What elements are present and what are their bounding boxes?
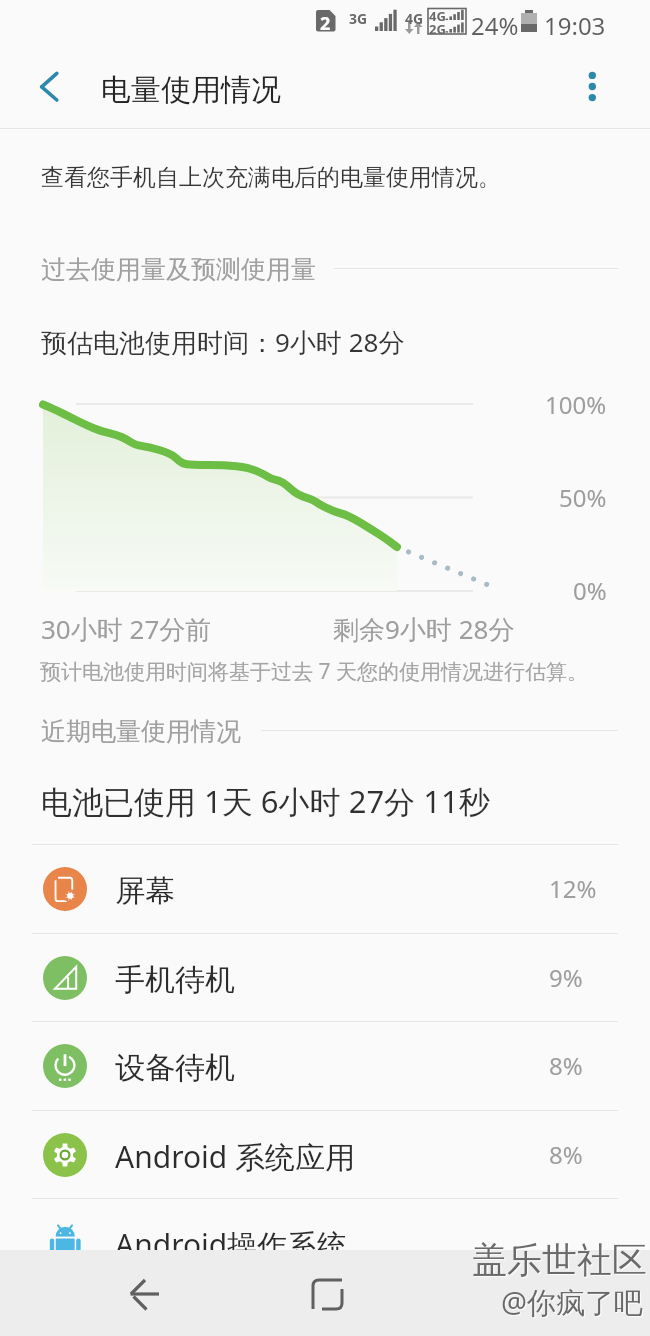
staticText: 50% [559,481,607,514]
staticText: 24% [471,9,519,42]
staticText: @你疯了吧 [501,1282,644,1322]
button[interactable]: More options [570,66,618,114]
button[interactable]: Back [24,66,72,114]
staticText: @你疯了吧 [502,1283,645,1323]
button[interactable]: Recents [292,1258,364,1330]
staticText: 手机待机 [115,961,235,999]
staticText: 电池已使用 1天 6小时 27分 11秒 [41,780,490,822]
staticText: 3G [349,9,368,28]
staticText: 2G [429,20,446,38]
button[interactable]: 设备待机 [0,1021,650,1110]
staticText: 盖乐世社区 [472,1238,647,1282]
staticText: 4G [405,9,424,28]
button[interactable]: 屏幕 [0,844,650,933]
staticText: 预计电池使用时间将基于过去 7 天您的使用情况进行估算。 [40,657,588,686]
staticText: 电量使用情况 [101,71,281,109]
staticText: 30小时 27分前 [41,611,212,647]
staticText: 8% [549,1049,583,1082]
staticText: 19:03 [544,9,606,42]
staticText: Android操作系统 [115,1224,348,1265]
staticText: 12% [549,872,597,905]
staticText: 查看您手机自上次充满电后的电量使用情况。 [41,163,501,192]
button[interactable]: Menu [475,1258,547,1330]
staticText: 过去使用量及预测使用量 [41,254,316,285]
staticText: 0% [573,574,607,607]
button[interactable]: Android操作系统 [0,1198,650,1287]
staticText: 预估电池使用时间：9小时 28分 [41,324,405,360]
staticText: 屏幕 [115,872,175,910]
staticText: 近期电量使用情况 [41,716,241,747]
staticText: 8% [549,1138,583,1171]
button[interactable]: 手机待机 [0,933,650,1022]
staticText: Android 系统应用 [115,1136,356,1177]
staticText: 盖乐世社区 [473,1239,648,1283]
staticText: 2 [320,11,331,36]
staticText: 4G [429,7,446,25]
staticText: 设备待机 [115,1049,235,1087]
button[interactable]: Android 系统应用 [0,1110,650,1199]
staticText: 100% [545,388,607,421]
staticText: 剩余9小时 28分 [333,611,515,647]
button[interactable]: Back [109,1258,181,1330]
staticText: 9% [549,961,583,994]
